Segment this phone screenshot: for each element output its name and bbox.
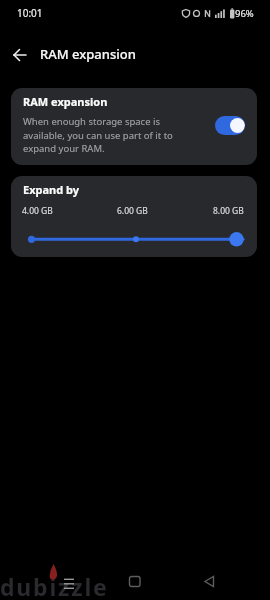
button[interactable]: [11, 176, 257, 257]
button[interactable]: [56, 571, 82, 595]
button[interactable]: Expand by: [11, 176, 257, 257]
staticText: 10:01: [17, 6, 43, 20]
staticText: RAM expansion: [23, 94, 108, 109]
button[interactable]: [122, 569, 148, 595]
button[interactable]: [6, 47, 34, 65]
staticText: Expand by: [23, 182, 80, 197]
staticText: RAM expansion: [40, 45, 136, 63]
staticText: When enough storage space is available, …: [23, 115, 191, 154]
staticText: 6.00 GB: [117, 205, 148, 217]
staticText: 4.00 GB: [22, 205, 53, 217]
button[interactable]: RAM expansion: [11, 88, 257, 165]
staticText: 8.00 GB: [213, 205, 244, 217]
button[interactable]: [215, 116, 245, 135]
button[interactable]: [197, 569, 223, 595]
staticText: dubizzle: [0, 571, 109, 600]
staticText: 96%: [235, 7, 254, 20]
